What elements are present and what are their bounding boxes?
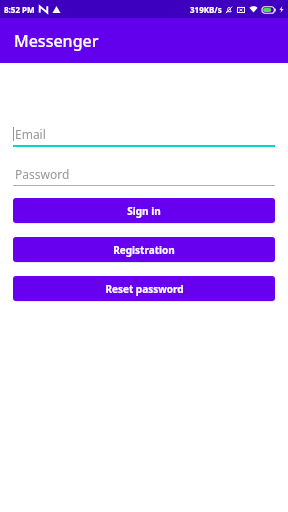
button[interactable]: Password <box>13 165 275 186</box>
staticText: Registration <box>113 243 175 257</box>
staticText: 319KB/s <box>190 4 222 15</box>
staticText: Email <box>15 126 46 142</box>
button[interactable]: Sign in <box>13 198 275 223</box>
staticText: 8:52 PM <box>4 4 35 15</box>
staticText: Messenger <box>14 30 99 52</box>
staticText: Reset password <box>105 282 184 296</box>
button[interactable]: Reset password <box>13 276 275 301</box>
button[interactable]: Registration <box>13 237 275 262</box>
staticText: Password <box>15 166 70 182</box>
staticText: Sign in <box>127 204 161 218</box>
button[interactable]: Email <box>13 125 275 147</box>
